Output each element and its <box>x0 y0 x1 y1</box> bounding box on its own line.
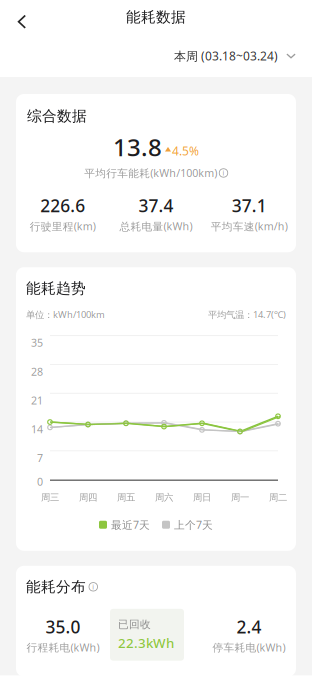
staticText: 周四 <box>79 492 97 503</box>
staticText: 能耗数据 <box>126 8 186 26</box>
staticText: 平均车速(km/h) <box>211 219 288 233</box>
staticText: 7 <box>37 451 43 465</box>
staticText: 周一 <box>231 492 249 503</box>
staticText: 37.1 <box>232 194 267 217</box>
staticText: i <box>222 168 224 177</box>
staticText: 周日 <box>193 492 211 503</box>
button[interactable]: 本周 (03.18~03.24) <box>174 37 312 68</box>
staticText: 0 <box>37 475 43 489</box>
staticText: i <box>92 582 94 591</box>
staticText: 13.8 <box>113 131 162 163</box>
staticText: 14 <box>31 422 43 436</box>
staticText: 4.5% <box>172 143 199 159</box>
staticText: 上个7天 <box>174 518 213 532</box>
staticText: 28 <box>31 364 43 379</box>
staticText: 总耗电量(kWh) <box>119 219 192 233</box>
button[interactable]: Back <box>0 1 39 35</box>
staticText: 21 <box>31 393 43 407</box>
staticText: 平均气温：14.7(℃) <box>208 308 286 321</box>
staticText: 35.0 <box>45 615 80 638</box>
staticText: 单位：kWh/100km <box>26 308 105 321</box>
staticText: 周六 <box>155 492 173 503</box>
staticText: 行驶里程(km) <box>30 219 96 233</box>
staticText: 周三 <box>41 492 59 503</box>
staticText: 226.6 <box>40 194 85 217</box>
staticText: 周五 <box>117 492 135 503</box>
staticText: 行程耗电(kWh) <box>26 640 99 654</box>
staticText: 周二 <box>269 492 287 503</box>
staticText: 22.3kWh <box>118 634 174 652</box>
staticText: 最近7天 <box>111 518 150 532</box>
staticText: 37.4 <box>138 194 173 217</box>
staticText: 平均行车能耗(kWh/100km) <box>84 166 217 180</box>
staticText: 综合数据 <box>27 107 87 125</box>
staticText: 能耗趋势 <box>26 279 86 297</box>
staticText: 本周 (03.18~03.24) <box>174 48 278 64</box>
staticText: 35 <box>31 336 43 350</box>
staticText: 2.4 <box>236 615 261 638</box>
staticText: 已回收 <box>118 618 151 631</box>
staticText: 停车耗电(kWh) <box>212 640 285 654</box>
staticText: 能耗分布 <box>26 578 86 596</box>
